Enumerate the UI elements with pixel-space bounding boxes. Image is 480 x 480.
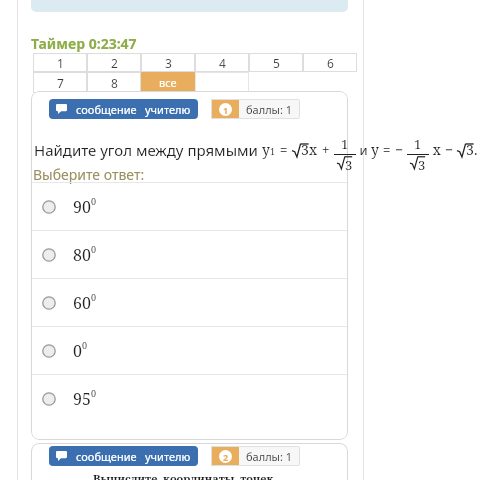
staticText: + xyxy=(318,140,334,159)
staticText: − xyxy=(395,140,407,159)
staticText: сообщение xyxy=(76,102,137,117)
button[interactable]: 3 xyxy=(141,53,195,72)
button[interactable]: 8 xyxy=(87,72,141,93)
staticText: 1 xyxy=(341,135,349,153)
staticText: y xyxy=(371,140,379,159)
staticText: 7 xyxy=(57,75,64,91)
button[interactable]: 1 xyxy=(211,99,300,119)
staticText: 60 xyxy=(73,292,91,314)
staticText: Таймер 0:23:47 xyxy=(31,34,137,53)
staticText: 1 xyxy=(223,104,229,116)
staticText: 0 xyxy=(91,387,97,399)
button[interactable]: 60 xyxy=(32,279,347,326)
button[interactable]: 2 xyxy=(211,446,300,466)
staticText: 0 xyxy=(91,243,97,255)
staticText: 0 xyxy=(73,340,82,362)
staticText: 0 xyxy=(82,339,88,351)
staticText: 0 xyxy=(91,195,97,207)
button[interactable]: 7 xyxy=(33,72,87,93)
button[interactable]: 80 xyxy=(32,231,347,278)
staticText: 80 xyxy=(73,244,91,266)
button[interactable]: 0 xyxy=(32,327,347,374)
staticText: Найдите угол между прямыми xyxy=(34,140,262,160)
staticText: 2 xyxy=(111,55,118,71)
staticText: = xyxy=(276,140,292,159)
button[interactable]: сообщение xyxy=(49,446,198,466)
staticText: 95 xyxy=(73,388,91,410)
staticText: y xyxy=(262,140,270,159)
staticText: 1 xyxy=(270,145,276,157)
staticText: 4 xyxy=(219,55,226,71)
staticText: 0 xyxy=(91,291,97,303)
button[interactable]: 90 xyxy=(32,183,347,230)
staticText: − xyxy=(445,140,457,159)
button[interactable]: 6 xyxy=(303,53,357,72)
staticText: сообщение xyxy=(76,449,137,464)
staticText: 3 xyxy=(301,140,309,159)
staticText: и xyxy=(356,141,371,159)
button[interactable]: сообщение xyxy=(49,99,198,119)
staticText: 5 xyxy=(273,55,280,71)
staticText: 90 xyxy=(73,196,91,218)
staticText: Вычислите координаты точек xyxy=(93,471,274,480)
staticText: 3 xyxy=(418,156,426,174)
staticText: все xyxy=(159,75,177,90)
staticText: 1 xyxy=(414,135,422,153)
button[interactable]: 1 xyxy=(33,53,87,72)
staticText: учителю xyxy=(145,449,191,464)
staticText: . xyxy=(474,140,478,159)
staticText: 6 xyxy=(327,55,334,71)
staticText: учителю xyxy=(145,102,191,117)
staticText: баллы: 1 xyxy=(246,102,293,117)
button[interactable]: 95 xyxy=(32,375,347,422)
staticText: 3 xyxy=(466,140,474,159)
button[interactable]: 5 xyxy=(249,53,303,72)
button[interactable]: 4 xyxy=(195,53,249,72)
staticText: x xyxy=(309,140,318,159)
button[interactable]: все xyxy=(141,72,195,93)
staticText: Выберите ответ: xyxy=(33,165,145,184)
staticText: баллы: 1 xyxy=(246,449,293,464)
staticText: = xyxy=(379,140,395,159)
staticText: 2 xyxy=(223,451,229,463)
staticText: x xyxy=(429,140,445,159)
staticText: 3 xyxy=(345,156,353,174)
staticText: 3 xyxy=(165,55,172,71)
button[interactable]: 2 xyxy=(87,53,141,72)
staticText: 1 xyxy=(57,55,64,71)
staticText: 8 xyxy=(111,75,118,91)
